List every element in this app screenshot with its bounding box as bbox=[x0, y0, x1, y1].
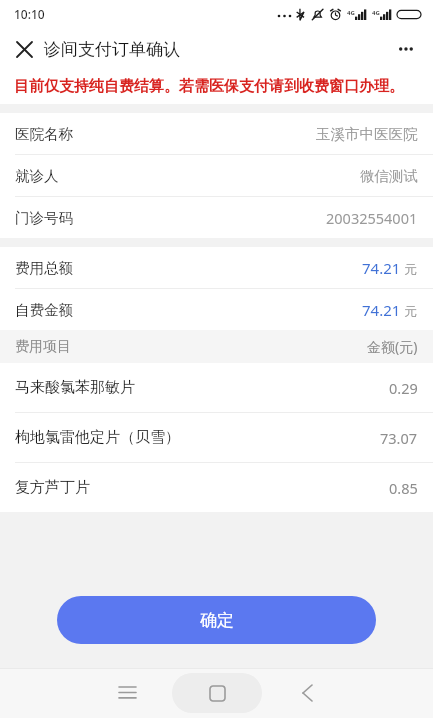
button[interactable]: 费用总额 bbox=[0, 247, 433, 288]
staticText: 74.21 元 bbox=[362, 300, 418, 320]
staticText: 74.21 元 bbox=[362, 258, 418, 278]
staticText: 金额(元) bbox=[367, 337, 418, 356]
button[interactable]: Back bbox=[262, 671, 352, 715]
staticText: 20032554001 bbox=[326, 208, 418, 228]
button[interactable]: 马来酸氯苯那敏片 bbox=[0, 363, 433, 412]
button[interactable]: 确定 bbox=[57, 596, 376, 644]
staticText: 目前仅支持纯自费结算。若需医保支付请到收费窗口办理。 bbox=[14, 77, 404, 96]
staticText: 10:10 bbox=[14, 6, 45, 22]
staticText: 医院名称 bbox=[15, 125, 73, 143]
button[interactable]: 枸地氯雷他定片（贝雪） bbox=[0, 413, 433, 462]
button[interactable]: 自费金额 bbox=[0, 289, 433, 330]
staticText: 马来酸氯苯那敏片 bbox=[15, 378, 135, 397]
staticText: 自费金额 bbox=[15, 301, 73, 319]
staticText: 0.85 bbox=[389, 478, 418, 498]
staticText: 复方芦丁片 bbox=[15, 478, 90, 497]
staticText: 4G bbox=[372, 9, 380, 17]
button[interactable]: More options bbox=[391, 31, 427, 67]
staticText: 就诊人 bbox=[15, 167, 59, 185]
staticText: 门诊号码 bbox=[15, 209, 73, 227]
staticText: 0.29 bbox=[389, 378, 418, 398]
staticText: 枸地氯雷他定片（贝雪） bbox=[15, 428, 180, 447]
staticText: 诊间支付订单确认 bbox=[44, 39, 180, 60]
staticText: 费用总额 bbox=[15, 259, 73, 277]
button[interactable]: 就诊人 bbox=[0, 155, 433, 196]
button[interactable]: Home bbox=[172, 673, 262, 713]
button[interactable]: 复方芦丁片 bbox=[0, 463, 433, 512]
staticText: 微信测试 bbox=[360, 167, 418, 185]
button[interactable]: 门诊号码 bbox=[0, 197, 433, 238]
staticText: 玉溪市中医医院 bbox=[316, 125, 418, 143]
staticText: 确定 bbox=[200, 610, 234, 631]
staticText: 4G bbox=[347, 9, 355, 17]
staticText: 73.07 bbox=[380, 428, 418, 448]
button[interactable]: 医院名称 bbox=[0, 113, 433, 154]
button[interactable]: Close bbox=[8, 33, 40, 65]
button[interactable]: Recents bbox=[82, 671, 172, 715]
staticText: 费用项目 bbox=[15, 338, 71, 356]
